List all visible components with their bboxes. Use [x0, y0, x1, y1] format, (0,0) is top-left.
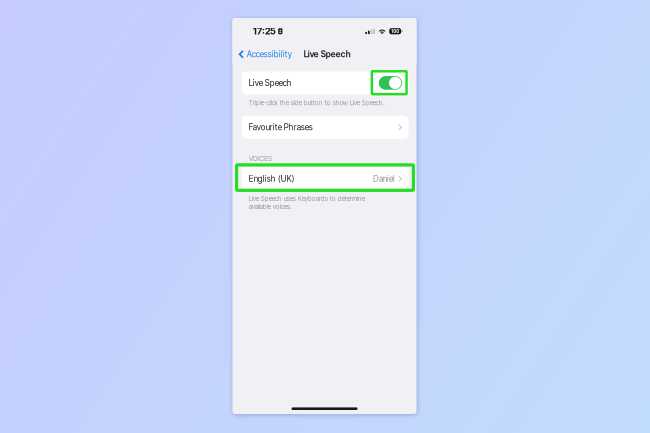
staticText: VOICES	[249, 154, 272, 163]
staticText: 17:25	[253, 26, 276, 37]
button[interactable]: Favourite Phrases	[232, 116, 408, 139]
staticText: Live Speech	[304, 49, 351, 59]
button[interactable]: English (UK)	[232, 167, 408, 190]
staticText: Favourite Phrases	[249, 122, 313, 132]
button[interactable]: Accessibility	[232, 44, 297, 64]
staticText: Daniel	[373, 174, 395, 184]
staticText: Triple-click the side button to show Liv…	[249, 99, 385, 107]
staticText: English (UK)	[249, 174, 295, 184]
staticText: 100	[391, 28, 399, 34]
staticText: Live Speech uses Keyboards to determine …	[249, 195, 365, 211]
button[interactable]: Live Speech	[232, 71, 408, 94]
staticText: Live Speech	[249, 78, 292, 88]
staticText: Accessibility	[247, 49, 292, 59]
